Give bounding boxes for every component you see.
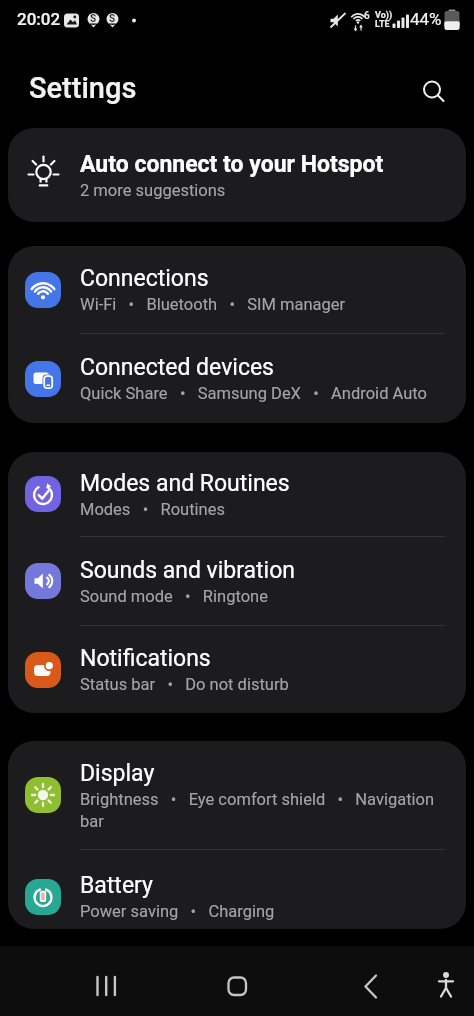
staticText: S xyxy=(90,13,97,25)
button[interactable] xyxy=(207,951,267,1011)
staticText: Sound mode • Ringtone xyxy=(80,587,268,606)
staticText: Wi-Fi • Bluetooth • SIM manager xyxy=(80,295,346,314)
staticText: Auto connect to your Hotspot xyxy=(80,151,384,178)
staticText: Battery xyxy=(80,872,153,899)
staticText: 2 more suggestions xyxy=(80,181,226,200)
staticText: Connections xyxy=(80,265,209,292)
staticText: LTE xyxy=(375,19,390,30)
staticText: Connected devices xyxy=(80,354,274,381)
staticText: Vo)) xyxy=(375,10,393,21)
staticText: Settings xyxy=(29,71,137,105)
button[interactable]: Battery xyxy=(8,850,466,929)
button[interactable] xyxy=(416,951,474,1011)
button[interactable]: Modes and Routines xyxy=(8,452,466,536)
staticText: 6 xyxy=(364,10,370,22)
staticText: Brightness • Eye comfort shield • Naviga… xyxy=(80,790,435,831)
button[interactable]: Notifications xyxy=(8,626,466,713)
staticText: Display xyxy=(80,760,155,787)
staticText: Quick Share • Samsung DeX • Android Auto xyxy=(80,384,427,403)
button[interactable] xyxy=(76,951,136,1011)
button[interactable]: Sounds and vibration xyxy=(8,537,466,625)
staticText: Modes and Routines xyxy=(80,470,290,497)
button[interactable]: Display xyxy=(8,741,466,849)
button[interactable]: Auto connect to your Hotspot xyxy=(8,128,466,222)
staticText: Notifications xyxy=(80,645,211,672)
staticText: Power saving • Charging xyxy=(80,902,275,921)
button[interactable] xyxy=(414,58,456,100)
button[interactable]: Connections xyxy=(8,246,466,333)
staticText: Sounds and vibration xyxy=(80,557,296,584)
staticText: S xyxy=(109,13,116,25)
staticText: Status bar • Do not disturb xyxy=(80,675,289,694)
button[interactable]: Connected devices xyxy=(8,334,466,423)
staticText: 20:02 xyxy=(17,9,61,29)
staticText: Modes • Routines xyxy=(80,500,225,519)
button[interactable] xyxy=(340,951,400,1011)
staticText: 44% xyxy=(410,9,442,29)
